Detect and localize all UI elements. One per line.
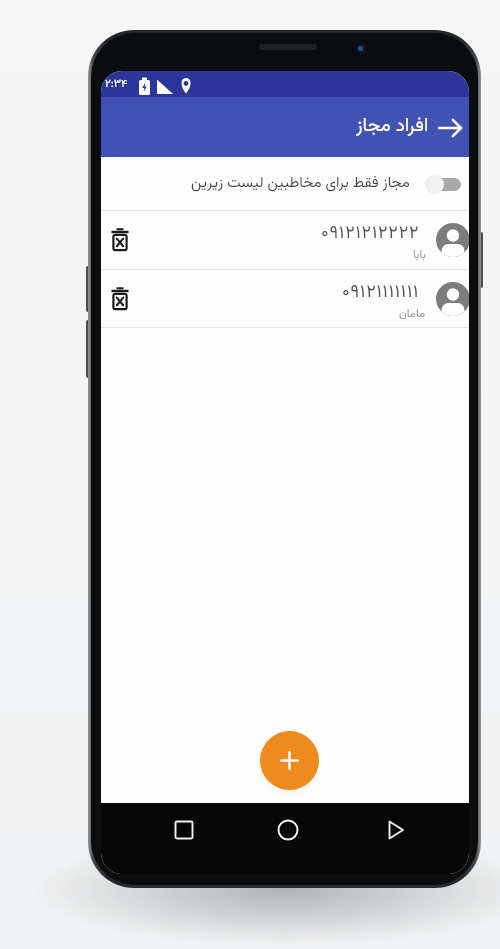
staticText: ۰۹۱۲۱۲۱۲۲۲۲ xyxy=(321,220,420,248)
staticText: مجاز فقط برای مخاطبین لیست زیرین xyxy=(191,172,410,195)
staticText: افراد مجاز xyxy=(356,112,429,142)
staticText: ۲:۳۴ xyxy=(105,76,128,93)
button[interactable]: ۰۹۱۲۱۲۱۲۲۲۲ xyxy=(101,210,469,269)
button[interactable] xyxy=(107,227,133,253)
button[interactable] xyxy=(260,731,319,790)
button[interactable] xyxy=(272,814,304,846)
button[interactable] xyxy=(379,814,411,846)
staticText: مامان xyxy=(399,305,426,323)
button[interactable]: مجاز فقط برای مخاطبین لیست زیرین xyxy=(101,157,469,210)
button[interactable] xyxy=(425,173,461,195)
button[interactable] xyxy=(425,105,469,149)
button[interactable] xyxy=(168,814,200,846)
staticText: ۰۹۱۲۱۱۱۱۱۱۱ xyxy=(342,279,420,307)
staticText: بابا xyxy=(413,246,426,264)
button[interactable] xyxy=(107,286,133,312)
button[interactable]: ۰۹۱۲۱۱۱۱۱۱۱ xyxy=(101,269,469,328)
